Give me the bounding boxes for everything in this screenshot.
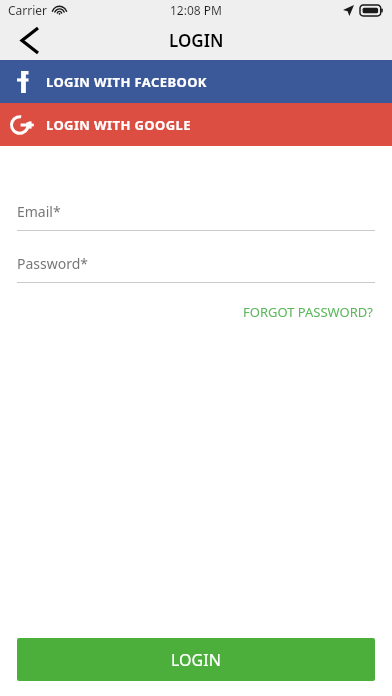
button[interactable]: Back [12, 22, 48, 58]
button[interactable]: LOGIN [17, 638, 375, 681]
staticText: Email* [17, 202, 61, 221]
staticText: LOGIN WITH GOOGLE [46, 116, 191, 134]
staticText: 12:08 PM [170, 2, 222, 18]
staticText: Carrier [8, 2, 48, 18]
button[interactable]: Password* [17, 254, 375, 283]
staticText: FORGOT PASSWORD? [243, 303, 373, 321]
staticText: LOGIN [171, 649, 221, 671]
staticText: LOGIN [169, 29, 224, 52]
button[interactable]: Email* [17, 202, 375, 231]
button[interactable]: FORGOT PASSWORD? [241, 299, 375, 325]
button[interactable]: LOGIN WITH FACEBOOK [0, 60, 392, 103]
staticText: Password* [17, 254, 89, 273]
button[interactable]: LOGIN WITH GOOGLE [0, 103, 392, 146]
staticText: LOGIN WITH FACEBOOK [46, 73, 207, 91]
